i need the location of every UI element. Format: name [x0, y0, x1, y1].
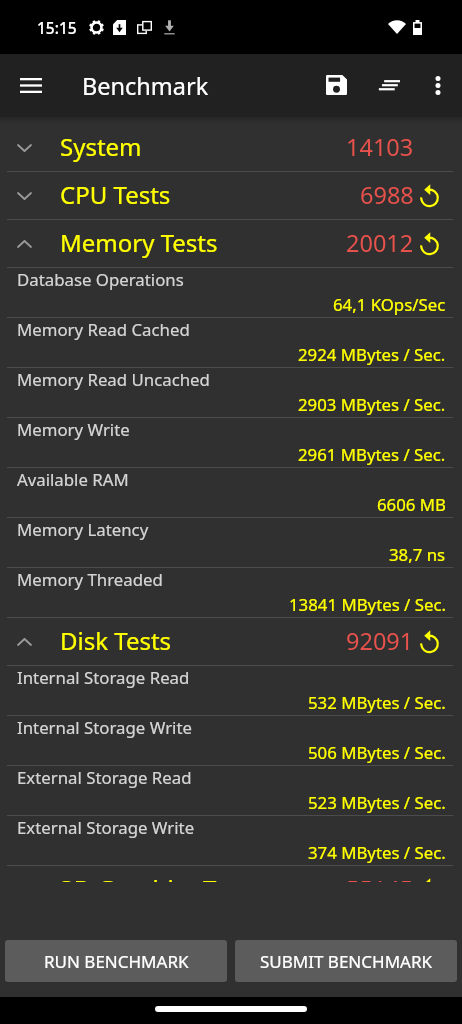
button[interactable]: External Storage Read: [0, 766, 462, 816]
button[interactable]: Internal Storage Read: [0, 666, 462, 716]
button[interactable]: Disk Tests: [0, 618, 462, 666]
staticText: 532 MBytes / Sec.: [308, 691, 446, 714]
staticText: 374 MBytes / Sec.: [308, 841, 446, 864]
button[interactable]: Open navigation menu: [0, 54, 62, 117]
button[interactable]: CPU Tests: [0, 172, 462, 220]
staticText: RUN BENCHMARK: [44, 950, 189, 973]
button[interactable]: Memory Latency: [0, 518, 462, 568]
staticText: Memory Threaded: [17, 568, 163, 591]
button[interactable]: External Storage Write: [0, 816, 462, 866]
staticText: SUBMIT BENCHMARK: [260, 950, 433, 973]
button[interactable]: Memory Tests: [0, 220, 462, 268]
staticText: Internal Storage Write: [17, 716, 192, 739]
staticText: 15:15: [37, 17, 77, 38]
staticText: Benchmark: [82, 70, 209, 102]
staticText: 14103: [346, 131, 414, 163]
button[interactable]: More options: [414, 54, 461, 117]
staticText: Internal Storage Read: [17, 666, 190, 689]
staticText: 64,1 KOps/Sec: [333, 293, 446, 316]
staticText: 20012: [346, 227, 414, 259]
staticText: Memory Latency: [17, 518, 149, 541]
staticText: Available RAM: [17, 468, 129, 491]
staticText: 2924 MBytes / Sec.: [298, 343, 446, 366]
staticText: System: [60, 130, 142, 163]
button[interactable]: System: [0, 124, 462, 172]
staticText: 506 MBytes / Sec.: [308, 741, 446, 764]
staticText: 2961 MBytes / Sec.: [298, 443, 446, 466]
button[interactable]: Sort: [360, 54, 414, 117]
button[interactable]: SUBMIT BENCHMARK: [235, 940, 457, 982]
staticText: 55145: [346, 873, 414, 882]
staticText: Disk Tests: [60, 624, 172, 657]
button[interactable]: Available RAM: [0, 468, 462, 518]
staticText: 2903 MBytes / Sec.: [298, 393, 446, 416]
button[interactable]: Memory Threaded: [0, 568, 462, 618]
button[interactable]: RUN BENCHMARK: [5, 940, 227, 982]
button[interactable]: Database Operations: [0, 268, 462, 318]
button[interactable]: 3D Graphics Tests: [0, 866, 462, 882]
staticText: 3D Graphics Tests: [60, 872, 260, 882]
button[interactable]: Internal Storage Write: [0, 716, 462, 766]
staticText: 523 MBytes / Sec.: [308, 791, 446, 814]
staticText: Memory Tests: [60, 226, 218, 259]
staticText: Memory Read Cached: [17, 318, 190, 341]
staticText: 92091: [346, 625, 414, 657]
staticText: Memory Read Uncached: [17, 368, 210, 391]
staticText: CPU Tests: [60, 178, 171, 211]
staticText: 13841 MBytes / Sec.: [289, 593, 446, 616]
staticText: Memory Write: [17, 418, 130, 441]
staticText: Database Operations: [17, 268, 184, 291]
button[interactable]: Memory Read Uncached: [0, 368, 462, 418]
staticText: External Storage Write: [17, 816, 195, 839]
staticText: 38,7 ns: [389, 543, 446, 566]
button[interactable]: Memory Write: [0, 418, 462, 468]
button[interactable]: Memory Read Cached: [0, 318, 462, 368]
staticText: 6606 MB: [377, 493, 446, 516]
button[interactable]: Save: [306, 54, 360, 117]
staticText: External Storage Read: [17, 766, 192, 789]
staticText: 6988: [360, 179, 414, 211]
